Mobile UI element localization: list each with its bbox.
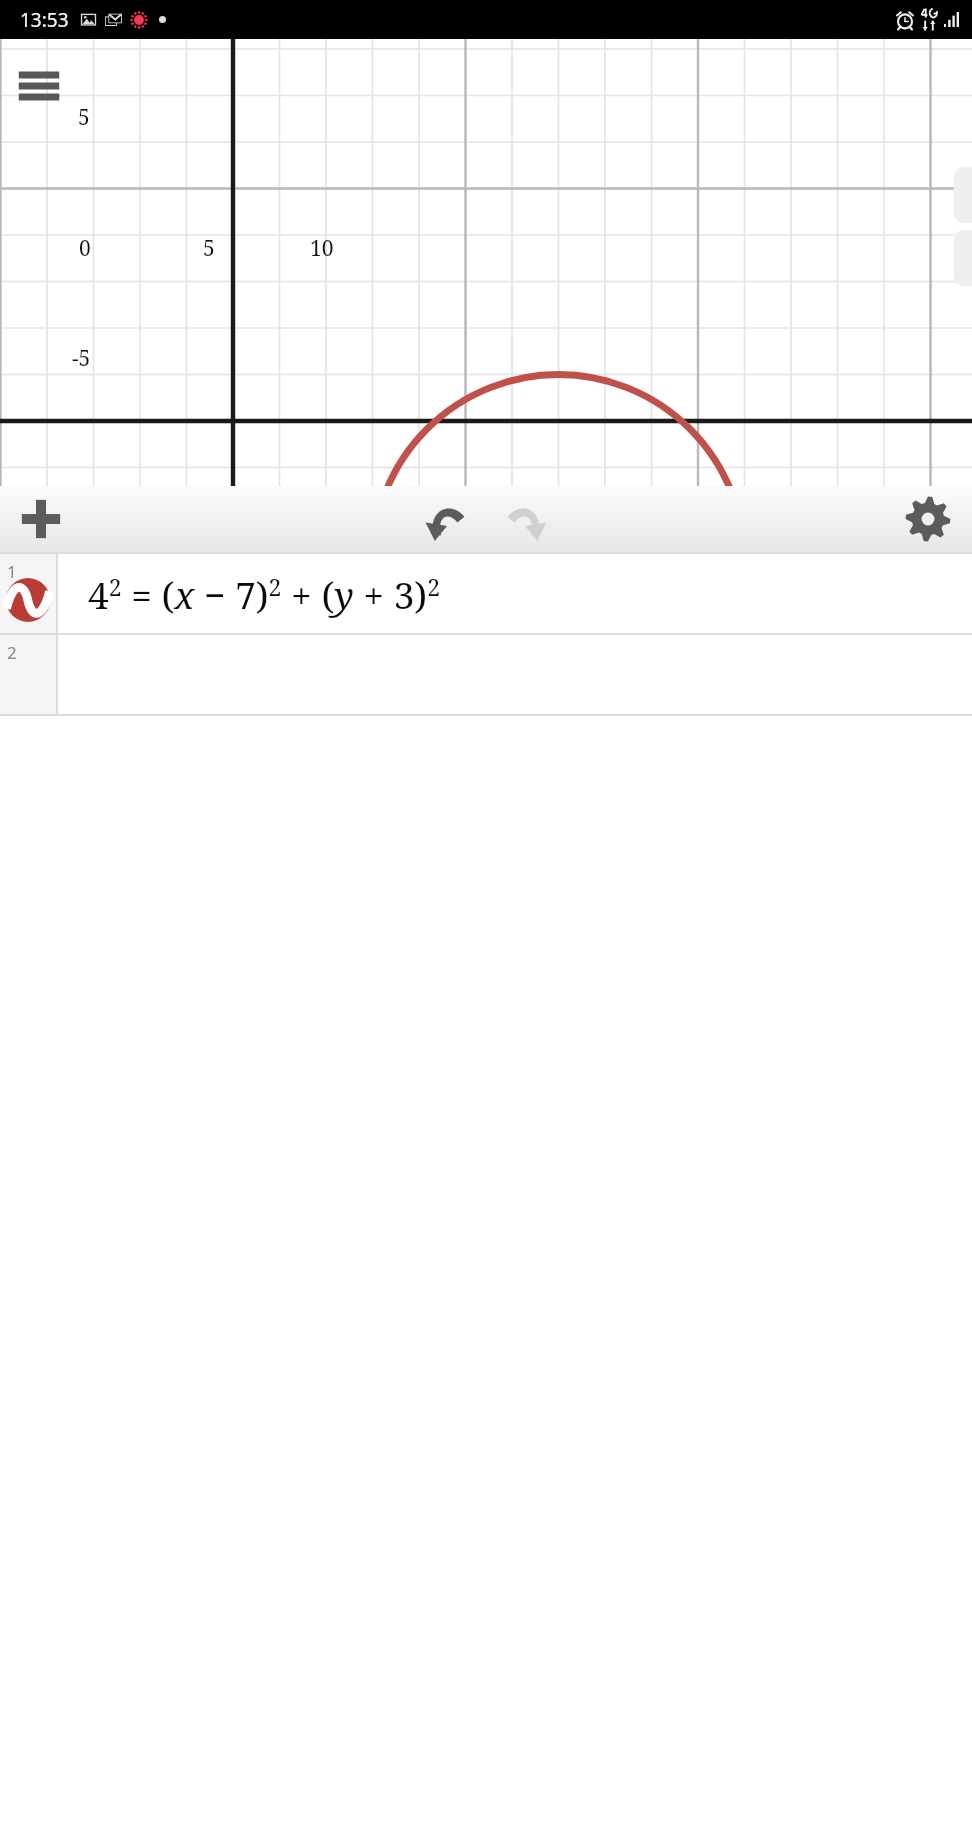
staticText: 5 [78, 103, 90, 132]
staticText: 2 [7, 641, 17, 664]
button[interactable]: Undo [418, 490, 476, 548]
staticText: 1 [7, 560, 17, 583]
button[interactable]: Redo [496, 490, 554, 548]
staticText: 13:53 [20, 7, 69, 33]
button[interactable]: Settings [900, 491, 956, 547]
button[interactable]: Add expression [12, 490, 70, 548]
button[interactable]: 2 [0, 635, 972, 714]
button[interactable]: 1 [0, 554, 972, 633]
staticText: 10 [310, 234, 334, 263]
staticText: 42 = (x − 7)2 + (y + 3)2 [88, 569, 440, 619]
staticText: 5 [203, 234, 215, 263]
staticText: -5 [72, 344, 91, 373]
button[interactable]: Menu [16, 63, 62, 109]
staticText: 0 [79, 234, 91, 263]
